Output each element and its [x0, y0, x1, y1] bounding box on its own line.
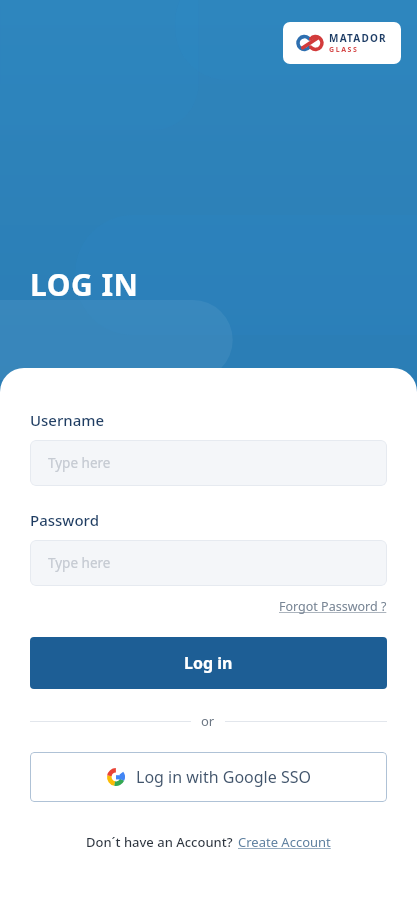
button[interactable]: Create Account	[238, 831, 331, 853]
button[interactable]: Type here	[30, 440, 387, 486]
staticText: Type here	[48, 554, 111, 572]
button[interactable]: Type here	[30, 540, 387, 586]
staticText: Password	[30, 510, 99, 530]
staticText: Log in with Google SSO	[136, 766, 311, 788]
staticText: Type here	[48, 454, 111, 472]
staticText: or	[201, 712, 215, 730]
staticText: LOG IN	[30, 264, 139, 305]
button[interactable]: Forgot Password ?	[279, 596, 387, 617]
staticText: GLASS	[329, 45, 359, 55]
button[interactable]: Log in with Google SSO	[30, 752, 387, 802]
button[interactable]: Matador Glass logo	[283, 22, 401, 64]
staticText: MATADOR	[329, 31, 387, 45]
button[interactable]: Log in	[30, 637, 387, 689]
staticText: Username	[30, 410, 105, 430]
staticText: Log in	[184, 652, 233, 674]
staticText: Don´t have an Account?	[86, 833, 233, 851]
